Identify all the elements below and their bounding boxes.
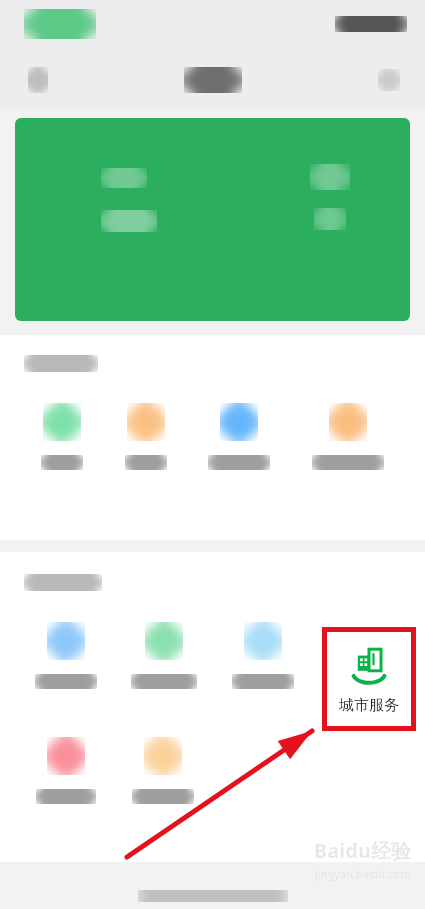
button[interactable] — [15, 118, 410, 321]
button[interactable] — [36, 737, 96, 804]
button[interactable] — [208, 403, 270, 470]
staticText: jingyan.baidu.com — [315, 866, 411, 881]
button[interactable]: 返回 — [16, 58, 60, 102]
button[interactable] — [125, 403, 167, 470]
staticText: Baidu经验 — [314, 837, 411, 864]
button[interactable] — [41, 403, 83, 470]
button[interactable] — [312, 403, 384, 470]
button[interactable] — [132, 737, 194, 804]
button[interactable]: 城市服务 — [322, 627, 416, 731]
button[interactable]: 更多 — [367, 58, 411, 102]
button[interactable] — [35, 622, 97, 689]
button[interactable] — [232, 622, 294, 689]
staticText: 城市服务 — [339, 696, 399, 715]
other: 城市服务 — [349, 646, 389, 686]
button[interactable] — [131, 622, 197, 689]
